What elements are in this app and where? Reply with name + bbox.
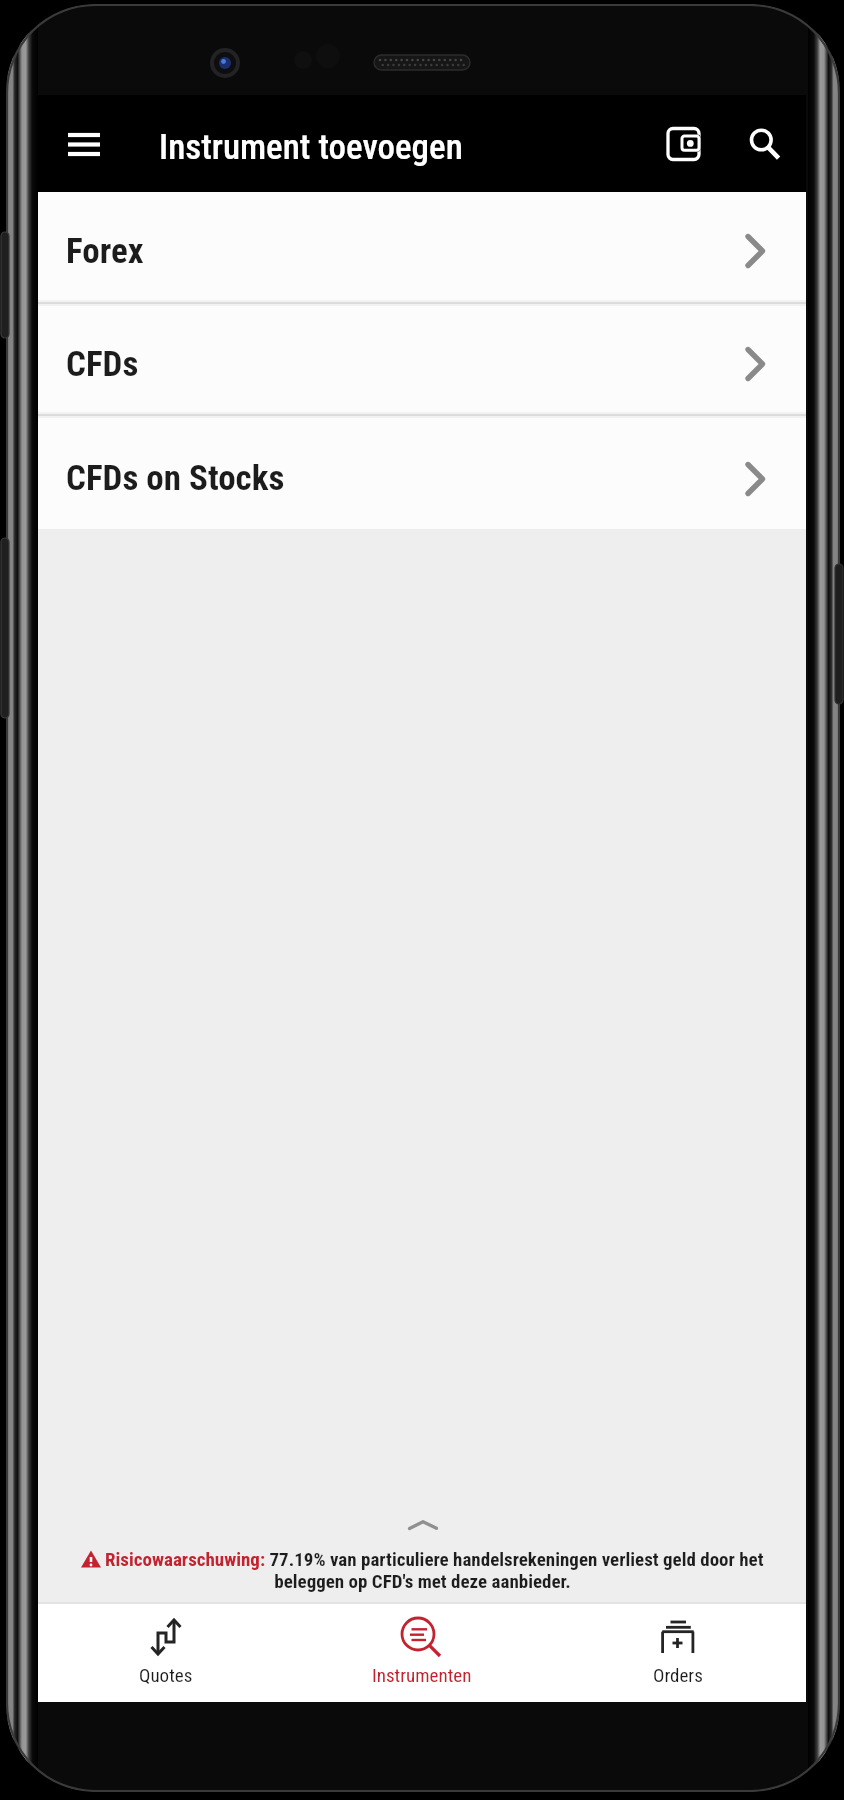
staticText: Orders: [653, 1664, 703, 1686]
button[interactable]: Orders: [550, 1604, 806, 1702]
staticText: Instrumenten: [372, 1664, 472, 1686]
staticText: beleggen op CFD's met deze aanbieder.: [274, 1570, 571, 1592]
button[interactable]: [736, 116, 792, 172]
staticText: Forex: [66, 231, 144, 272]
button[interactable]: CFDs: [38, 306, 806, 412]
staticText: Quotes: [139, 1664, 193, 1686]
staticText: CFDs on Stocks: [66, 458, 285, 499]
staticText: Risicowaarschuwing: 77.19% van particuli…: [105, 1548, 764, 1570]
button[interactable]: Instrumenten: [294, 1604, 550, 1702]
button[interactable]: [56, 116, 112, 172]
staticText: CFDs: [66, 344, 139, 385]
button[interactable]: Forex: [38, 192, 806, 300]
button[interactable]: [656, 116, 712, 172]
staticText: Instrument toevoegen: [159, 127, 463, 168]
button[interactable]: Quotes: [38, 1604, 294, 1702]
button[interactable]: CFDs on Stocks: [38, 418, 806, 529]
